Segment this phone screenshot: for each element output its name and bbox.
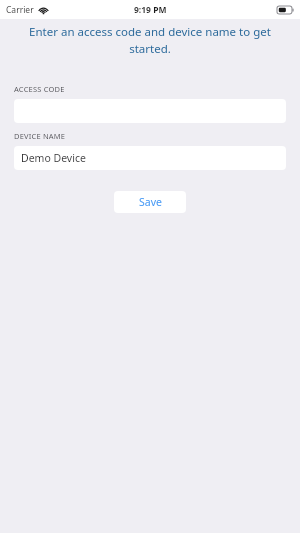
staticText: 9:19 PM [134, 4, 167, 16]
staticText: Demo Device [21, 151, 86, 165]
staticText: DEVICE NAME [14, 131, 300, 141]
other: Battery level [277, 6, 294, 14]
button[interactable]: Save [114, 191, 186, 213]
other: Wi-Fi signal [38, 6, 49, 15]
staticText: ACCESS CODE [14, 84, 300, 94]
button[interactable]: Demo Device [14, 146, 286, 170]
staticText: Carrier [6, 4, 34, 16]
staticText: Save [139, 195, 162, 209]
staticText: Enter an access code and device name to … [26, 24, 274, 56]
